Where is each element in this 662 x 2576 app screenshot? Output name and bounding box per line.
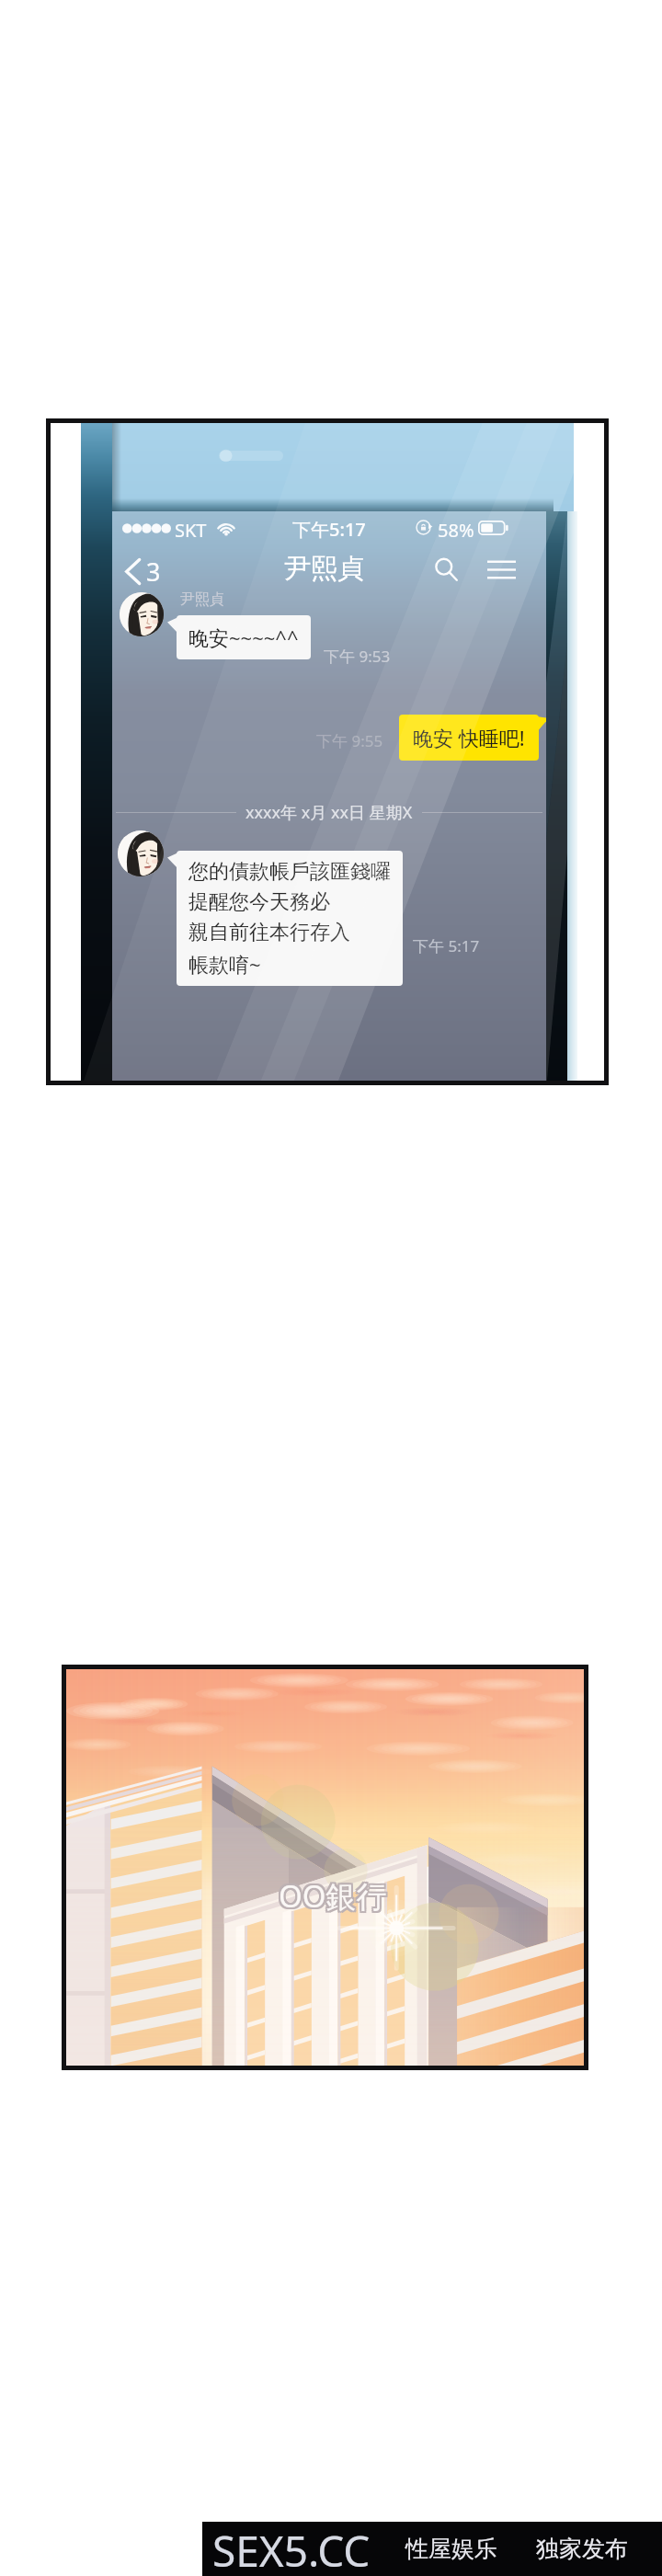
staticText: OO銀行: [280, 1873, 389, 1915]
staticText: OO銀行: [280, 1875, 389, 1917]
staticText: OO銀行: [277, 1877, 385, 1918]
staticText: 親自前往本行存入: [188, 920, 350, 945]
button[interactable]: Menu: [483, 555, 520, 585]
staticText: 独家发布: [536, 2535, 628, 2563]
button[interactable]: Back: [120, 550, 166, 593]
staticText: 下午5:17: [292, 517, 366, 542]
staticText: 尹熙貞: [284, 552, 364, 586]
staticText: 3: [146, 555, 161, 589]
staticText: OO銀行: [279, 1875, 387, 1917]
staticText: 帳款唷~: [188, 950, 261, 978]
staticText: 晚安~~~~^^: [188, 624, 299, 651]
staticText: xxxx年 x月 xx日 星期X: [245, 801, 413, 824]
staticText: 下午 9:55: [316, 730, 383, 751]
staticText: 提醒您今天務必: [188, 889, 330, 915]
staticText: SKT: [175, 518, 207, 543]
staticText: 尹熙貞: [180, 590, 224, 609]
staticText: OO銀行: [277, 1875, 385, 1917]
staticText: OO銀行: [280, 1877, 389, 1918]
staticText: OO銀行: [279, 1877, 387, 1918]
staticText: 下午 9:53: [324, 646, 391, 667]
staticText: 您的債款帳戶該匯錢囉: [188, 859, 391, 885]
staticText: 下午 5:17: [413, 935, 480, 956]
staticText: 性屋娱乐: [405, 2535, 497, 2563]
staticText: SEX5.CC: [212, 2522, 371, 2576]
button[interactable]: Search: [428, 552, 463, 587]
staticText: 58%: [438, 518, 474, 543]
staticText: OO銀行: [277, 1873, 385, 1915]
staticText: 晚安 快睡吧!: [413, 724, 525, 751]
staticText: OO銀行: [279, 1873, 387, 1915]
